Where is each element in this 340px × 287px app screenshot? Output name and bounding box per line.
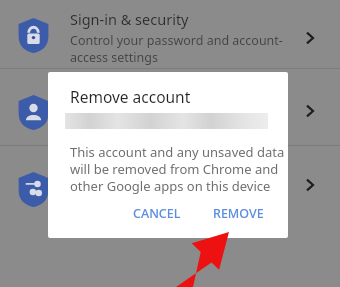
button[interactable]: CANCEL bbox=[127, 199, 187, 228]
staticText: Control your password and account- acces… bbox=[70, 32, 283, 65]
staticText: Remove account bbox=[70, 86, 191, 107]
button[interactable]: Sign-in & security bbox=[0, 0, 340, 68]
button[interactable]: Account preferences bbox=[0, 146, 340, 222]
button[interactable]: REMOVE bbox=[207, 199, 270, 228]
button[interactable]: Personal info & privacy bbox=[0, 69, 340, 145]
staticText: REMOVE bbox=[213, 205, 264, 222]
staticText: Sign-in & security bbox=[70, 9, 189, 29]
staticText: This account and any unsaved data will b… bbox=[70, 143, 285, 195]
staticText: CANCEL bbox=[133, 205, 181, 222]
